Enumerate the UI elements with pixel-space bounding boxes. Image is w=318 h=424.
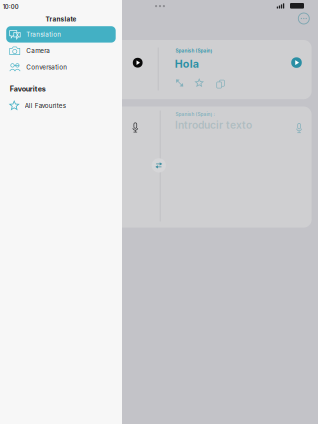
staticText: All Favourites: [25, 102, 66, 109]
button[interactable]: Conversation: [6, 59, 116, 75]
staticText: Introducir texto: [175, 119, 252, 131]
button[interactable]: Play original: [122, 40, 153, 85]
staticText: X: [16, 33, 19, 38]
button[interactable]: Play translation: [286, 40, 306, 85]
staticText: Translate: [45, 15, 76, 23]
button[interactable]: Add to favourites: [195, 79, 203, 87]
button[interactable]: Dictate: [122, 109, 149, 146]
staticText: Favourites: [10, 84, 46, 93]
button[interactable]: Expand: [175, 79, 184, 87]
button[interactable]: Swap languages: [151, 158, 166, 173]
button[interactable]: Camera: [6, 43, 116, 59]
button[interactable]: All Favourites: [6, 97, 116, 114]
button[interactable]: Dictate translation: [289, 110, 309, 147]
button[interactable]: X: [6, 26, 116, 43]
staticText: Translation: [26, 31, 61, 38]
staticText: Spanish (Spain): [175, 48, 212, 54]
staticText: Spanish (Spain) :: [176, 112, 215, 117]
staticText: 10:00: [3, 3, 19, 10]
staticText: Hola: [175, 57, 199, 70]
button[interactable]: Copy: [215, 79, 223, 87]
staticText: Conversation: [26, 63, 67, 71]
button[interactable]: More options: [297, 11, 311, 25]
staticText: Camera: [26, 47, 50, 55]
